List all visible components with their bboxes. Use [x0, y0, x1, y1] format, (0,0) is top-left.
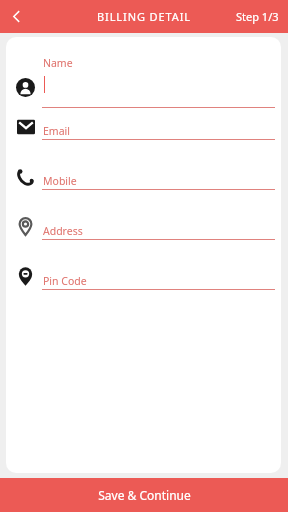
button[interactable]: Back: [0, 0, 33, 33]
staticText: Email: [43, 124, 70, 138]
staticText: Name: [43, 56, 73, 70]
button[interactable]: Name: [6, 56, 281, 112]
button[interactable]: Pin Code: [6, 266, 281, 296]
staticText: Pin Code: [43, 274, 87, 288]
button[interactable]: Mobile: [6, 166, 281, 196]
button[interactable]: Address: [6, 216, 281, 246]
button[interactable]: Save & Continue: [0, 478, 288, 512]
staticText: Save & Continue: [98, 487, 191, 503]
staticText: Mobile: [43, 174, 77, 188]
staticText: Address: [43, 224, 83, 238]
button[interactable]: Email: [6, 116, 281, 146]
staticText: Step 1/3: [236, 9, 279, 24]
staticText: BILLING DETAIL: [97, 9, 191, 24]
